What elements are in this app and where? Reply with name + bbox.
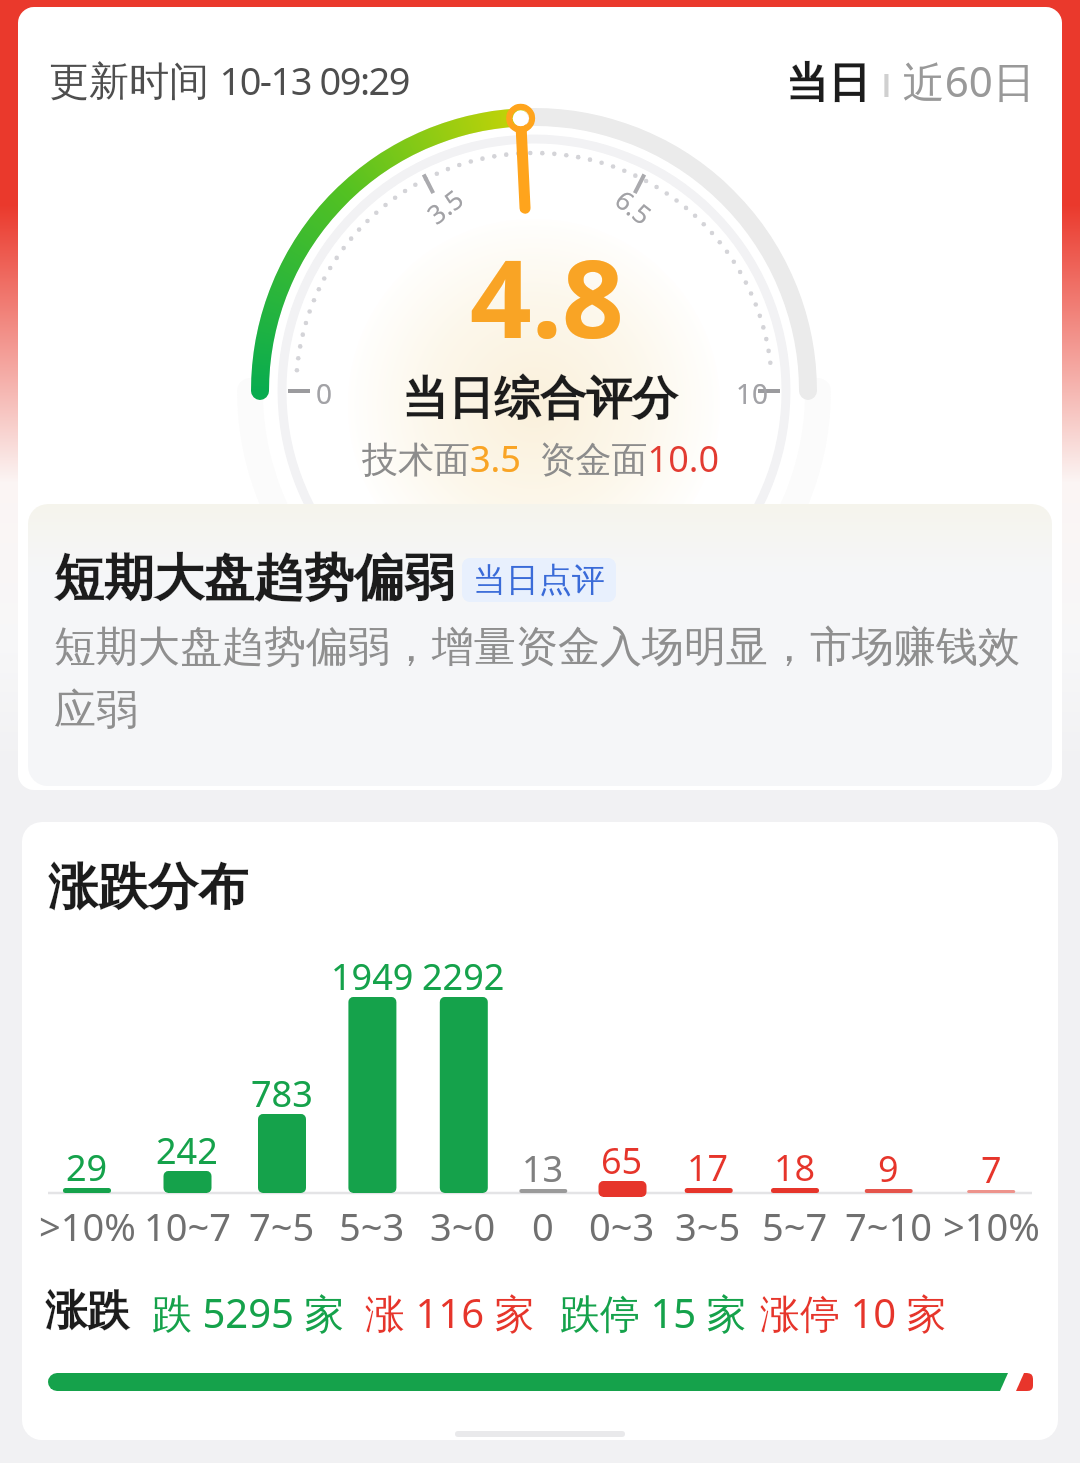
staticText: 10	[736, 374, 769, 412]
button[interactable]	[18, 7, 1062, 790]
button[interactable]	[22, 822, 1058, 1440]
staticText: 7~5	[249, 1200, 315, 1252]
staticText: 5~7	[762, 1200, 828, 1252]
staticText: 0~3	[589, 1200, 655, 1252]
staticText: 18	[774, 1143, 816, 1192]
staticText: 7~10	[845, 1200, 932, 1252]
staticText: 242	[156, 1126, 218, 1175]
staticText: >10%	[943, 1200, 1040, 1252]
staticText: 6.5	[609, 181, 659, 232]
staticText: 3~5	[675, 1200, 741, 1252]
staticText: 10~7	[144, 1200, 231, 1252]
staticText: 短期大盘趋势偏弱	[54, 547, 454, 610]
staticText: 涨跌	[45, 1285, 129, 1338]
staticText: 0	[532, 1200, 554, 1252]
staticText: 1949	[331, 952, 414, 1001]
staticText: 5~3	[339, 1200, 405, 1252]
staticText: 技术面3.5 资金面10.0	[362, 434, 719, 483]
staticText: 3~0	[430, 1200, 496, 1252]
staticText: >10%	[39, 1200, 136, 1252]
button[interactable]	[28, 504, 1052, 786]
staticText: 更新时间 10-13 09:29	[49, 52, 410, 107]
staticText: 7	[981, 1145, 1002, 1194]
staticText: 短期大盘趋势偏弱，增量资金入场明显，市场赚钱效	[54, 621, 1020, 674]
staticText: 涨停 10 家	[760, 1285, 947, 1340]
button[interactable]: 当日点评	[462, 558, 616, 602]
staticText: 当日点评	[473, 559, 605, 601]
staticText: 29	[66, 1143, 108, 1192]
staticText: 跌 5295 家	[152, 1285, 345, 1340]
staticText: 13	[522, 1144, 564, 1193]
staticText: 应弱	[54, 684, 138, 737]
staticText: 当日综合评分	[402, 370, 678, 428]
staticText: 9	[878, 1144, 899, 1193]
staticText: 跌停 15 家	[560, 1285, 747, 1340]
staticText: 65	[601, 1136, 643, 1185]
staticText: 17	[687, 1143, 729, 1192]
staticText: 2292	[422, 952, 505, 1001]
staticText: 当日 ı 近60日	[786, 52, 1035, 109]
staticText: 4.8	[470, 223, 624, 370]
button[interactable]: 当日 ı 近60日	[655, 45, 1035, 115]
staticText: 涨跌分布	[48, 856, 248, 919]
staticText: 3.5	[419, 181, 470, 231]
staticText: 0	[316, 374, 333, 412]
staticText: 783	[251, 1069, 313, 1118]
staticText: 涨 116 家	[365, 1285, 535, 1340]
